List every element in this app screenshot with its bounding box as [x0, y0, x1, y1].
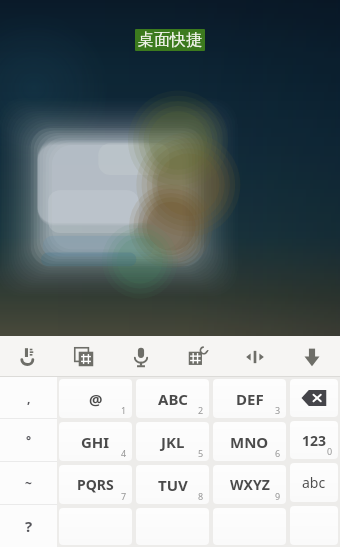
- button[interactable]: JKL: [136, 422, 209, 461]
- button[interactable]: TUV: [136, 465, 209, 504]
- button[interactable]: Switch keyboard: [56, 336, 112, 377]
- staticText: JKL: [161, 432, 185, 452]
- button[interactable]: WXYZ: [213, 465, 286, 504]
- button[interactable]: ,: [0, 377, 57, 418]
- button[interactable]: PQRS: [59, 465, 132, 504]
- staticText: 3: [275, 404, 281, 416]
- staticText: GHI: [81, 432, 110, 452]
- staticText: ABC: [158, 389, 188, 409]
- button[interactable]: 123: [290, 421, 338, 459]
- staticText: 4: [121, 447, 127, 459]
- button[interactable]: Switch layout: [169, 336, 226, 377]
- staticText: 桌面快捷: [138, 30, 202, 50]
- staticText: 2: [198, 404, 204, 416]
- button[interactable]: ABC: [136, 379, 209, 418]
- staticText: 0: [327, 445, 333, 457]
- staticText: PQRS: [77, 475, 114, 494]
- button[interactable]: °: [0, 419, 57, 461]
- staticText: 1: [121, 404, 127, 416]
- staticText: DEF: [236, 389, 264, 409]
- button[interactable]: Handwriting input: [0, 336, 56, 377]
- staticText: @: [89, 389, 103, 409]
- staticText: 7: [121, 490, 127, 502]
- staticText: ~: [25, 475, 32, 491]
- staticText: °: [26, 432, 32, 448]
- button[interactable]: DEF: [213, 379, 286, 418]
- staticText: ?: [25, 516, 33, 536]
- button[interactable]: Hide keyboard: [283, 336, 340, 377]
- staticText: 123: [302, 431, 327, 450]
- button[interactable]: MNO: [213, 422, 286, 461]
- staticText: MNO: [230, 432, 269, 452]
- staticText: abc: [302, 473, 326, 492]
- staticText: 8: [198, 490, 204, 502]
- staticText: TUV: [158, 475, 188, 495]
- button[interactable]: ~: [0, 462, 57, 504]
- button[interactable]: abc: [290, 463, 338, 502]
- button[interactable]: Resize keyboard: [226, 336, 283, 377]
- button[interactable]: GHI: [59, 422, 132, 461]
- button[interactable]: 桌面快捷: [135, 29, 205, 51]
- button[interactable]: Delete: [290, 379, 338, 417]
- staticText: 5: [198, 447, 204, 459]
- staticText: ,: [27, 390, 31, 406]
- button[interactable]: @: [59, 379, 132, 418]
- staticText: 9: [275, 490, 281, 502]
- button[interactable]: ?: [0, 505, 57, 547]
- staticText: 6: [275, 447, 281, 459]
- staticText: WXYZ: [230, 475, 270, 494]
- button[interactable]: Voice input: [112, 336, 169, 377]
